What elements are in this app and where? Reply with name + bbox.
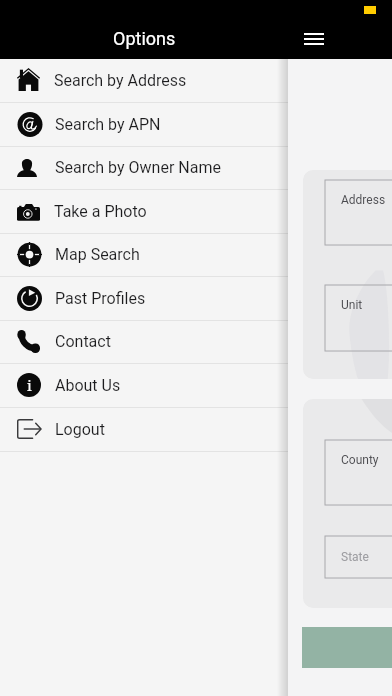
staticText: Map Search [55, 245, 140, 264]
staticText: About Us [55, 376, 121, 395]
staticText: Logout [55, 420, 105, 439]
staticText: Past Profiles [55, 289, 146, 308]
button[interactable]: Past Profiles [0, 277, 288, 321]
button[interactable]: Open navigation menu [298, 23, 330, 55]
staticText: Search by Address [54, 71, 187, 90]
button[interactable]: Search by Address [0, 59, 288, 103]
staticText: Search by Owner Name [55, 158, 221, 177]
button[interactable]: Contact [0, 320, 288, 364]
button[interactable]: Logout [0, 408, 288, 452]
staticText: i [27, 375, 32, 395]
staticText: Options [113, 28, 176, 49]
staticText: Unit [341, 298, 363, 312]
button[interactable]: Take a Photo [0, 190, 288, 234]
button[interactable]: i [0, 364, 288, 408]
staticText: Take a Photo [54, 202, 147, 221]
button[interactable]: Map Search [0, 233, 288, 277]
staticText: Search by APN [55, 115, 161, 134]
staticText: State [341, 550, 369, 564]
staticText: County [341, 453, 379, 467]
staticText: Contact [55, 332, 111, 351]
staticText: Address [341, 193, 386, 207]
button[interactable]: Search by Owner Name [0, 146, 288, 190]
button[interactable]: Search by APN [0, 103, 288, 147]
